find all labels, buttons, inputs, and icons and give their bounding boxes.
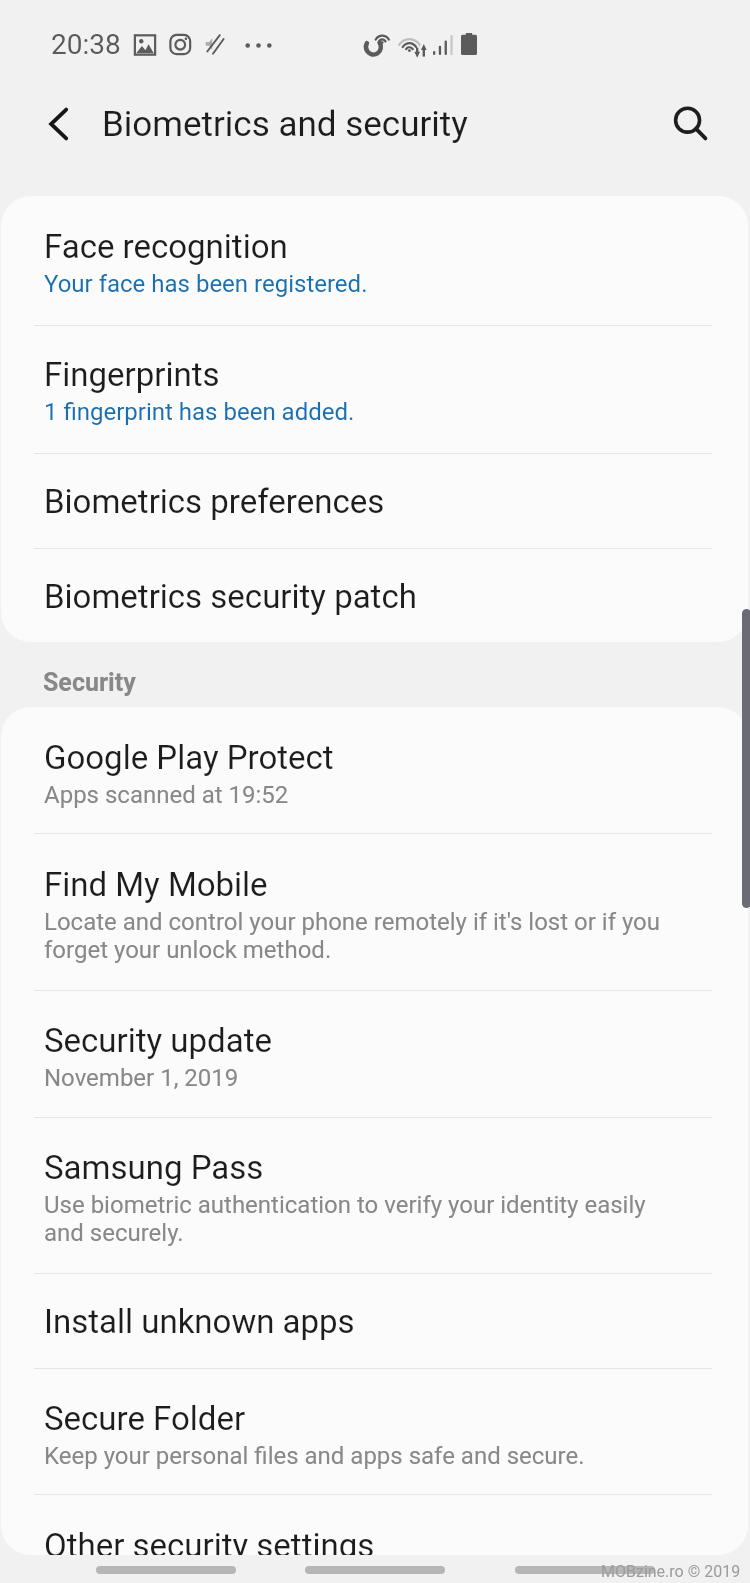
button[interactable]: Install unknown apps — [1, 1274, 748, 1369]
button[interactable]: Fingerprints — [1, 326, 748, 454]
staticText: Fingerprints — [44, 355, 220, 394]
staticText: November 1, 2019 — [44, 1064, 239, 1092]
staticText: MOBzine.ro © 2019 — [601, 1562, 741, 1581]
staticText: Samsung Pass — [44, 1148, 264, 1187]
button[interactable]: Samsung Pass — [1, 1118, 748, 1274]
staticText: Use biometric authentication to verify y… — [44, 1191, 666, 1247]
staticText: Face recognition — [44, 227, 288, 266]
staticText: Biometrics and security — [102, 104, 468, 145]
staticText: Keep your personal files and apps safe a… — [44, 1442, 585, 1470]
staticText: Locate and control your phone remotely i… — [44, 908, 666, 964]
button[interactable]: Find My Mobile — [1, 834, 748, 991]
staticText: Biometrics preferences — [44, 482, 385, 521]
staticText: Apps scanned at 19:52 — [44, 781, 289, 809]
staticText: Your face has been registered. — [44, 270, 368, 298]
staticText: Biometrics security patch — [44, 577, 417, 616]
button[interactable]: Security update — [1, 991, 748, 1118]
button[interactable]: Back — [28, 93, 90, 155]
staticText: Google Play Protect — [44, 738, 334, 777]
button[interactable]: Search — [660, 93, 722, 155]
staticText: 1 fingerprint has been added. — [44, 398, 355, 426]
staticText: Secure Folder — [44, 1399, 246, 1438]
button[interactable]: Biometrics preferences — [1, 454, 748, 549]
staticText: Other security settings — [44, 1526, 375, 1555]
button[interactable]: Other security settings — [1, 1495, 748, 1555]
button[interactable]: Secure Folder — [1, 1369, 748, 1495]
staticText: Find My Mobile — [44, 865, 268, 904]
staticText: Security update — [44, 1021, 272, 1060]
staticText: Install unknown apps — [44, 1302, 355, 1341]
button[interactable]: Google Play Protect — [1, 707, 748, 834]
button[interactable]: Biometrics security patch — [1, 549, 748, 642]
staticText: Security — [43, 668, 136, 697]
button[interactable]: Face recognition — [1, 196, 748, 326]
staticText: 20:38 — [51, 28, 121, 61]
